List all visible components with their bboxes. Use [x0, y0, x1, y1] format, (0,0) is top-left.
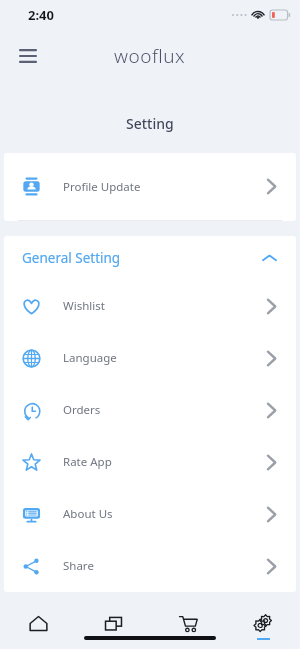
staticText: About Us	[63, 506, 113, 522]
staticText: Rate App	[63, 454, 112, 470]
staticText: Share	[63, 558, 94, 574]
staticText: Language	[63, 350, 117, 366]
staticText: Profile Update	[63, 179, 141, 195]
staticText: General Setting	[22, 249, 121, 267]
button[interactable]: Menu	[10, 38, 46, 74]
staticText: Setting	[126, 114, 174, 133]
button[interactable]: Share	[4, 540, 296, 592]
button[interactable]: About Us	[4, 488, 296, 540]
button[interactable]: Settings	[225, 603, 300, 649]
staticText: Orders	[63, 402, 101, 418]
button[interactable]: Categories	[75, 603, 150, 649]
button[interactable]: Home	[0, 603, 75, 649]
staticText: wooflux	[114, 43, 186, 69]
button[interactable]: Language	[4, 332, 296, 384]
button[interactable]: Cart	[150, 603, 225, 649]
staticText: Wishlist	[63, 298, 105, 314]
button[interactable]: Rate App	[4, 436, 296, 488]
button[interactable]: Wishlist	[4, 280, 296, 332]
button[interactable]: General Setting	[4, 236, 296, 280]
button[interactable]: Orders	[4, 384, 296, 436]
button[interactable]: Profile Update	[4, 153, 296, 220]
staticText: 2:40	[28, 6, 54, 24]
